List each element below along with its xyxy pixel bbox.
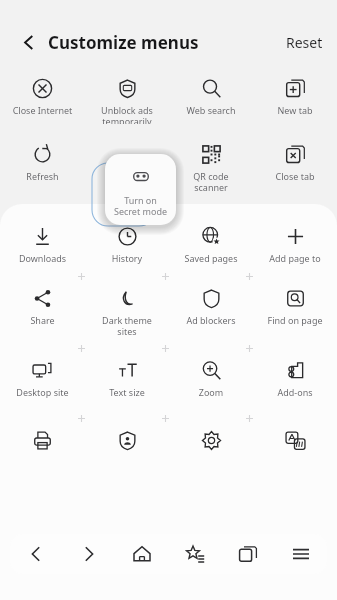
staticText: Turn on Secret mode	[105, 194, 176, 217]
button[interactable]: Close tab	[253, 138, 337, 200]
button[interactable]: Downloads	[0, 220, 85, 270]
staticText: Add-ons	[254, 386, 336, 398]
button[interactable]: Turn on Secret mode	[105, 154, 176, 225]
button[interactable]: Forward	[62, 534, 115, 574]
button[interactable]: Back	[10, 24, 46, 60]
button[interactable]: Ad blockers	[169, 282, 253, 342]
staticText: Downloads	[1, 252, 84, 264]
button[interactable]: Close Internet	[0, 72, 85, 124]
staticText: Saved pages	[170, 252, 252, 264]
button[interactable]: Refresh	[0, 138, 85, 200]
button[interactable]: QR code scanner	[169, 138, 253, 200]
staticText: History	[86, 252, 168, 264]
staticText: Unblock ads temporarily	[86, 104, 168, 124]
staticText: Ad blockers	[170, 314, 252, 326]
staticText: Text size	[86, 386, 168, 398]
staticText: Refresh	[1, 170, 84, 182]
button[interactable]: Dark theme sites	[85, 282, 169, 342]
button[interactable]: History	[85, 220, 169, 270]
button[interactable]: Saved pages	[169, 220, 253, 270]
button[interactable]	[169, 424, 253, 468]
staticText: Dark theme sites	[86, 314, 168, 337]
button[interactable]: Share	[0, 282, 85, 342]
button[interactable]: Add page to	[253, 220, 337, 270]
staticText: Customize menus	[48, 31, 199, 54]
button[interactable]: Back	[10, 534, 62, 574]
button[interactable]: Bookmarks	[168, 534, 221, 574]
staticText: Close tab	[254, 170, 336, 182]
staticText: Web search	[170, 104, 252, 116]
button[interactable]: Unblock ads temporarily	[85, 72, 169, 124]
button[interactable]: Reset	[280, 27, 329, 58]
button[interactable]	[0, 424, 85, 468]
button[interactable]: New tab	[253, 72, 337, 124]
button[interactable]: Zoom	[169, 354, 253, 412]
button[interactable]	[85, 424, 169, 468]
button[interactable]: Text size	[85, 354, 169, 412]
staticText: QR code scanner	[170, 170, 252, 193]
staticText: Close Internet	[1, 104, 84, 116]
button[interactable]: Desktop site	[0, 354, 85, 412]
button[interactable]: Find on page	[253, 282, 337, 342]
button[interactable]: Add-ons	[253, 354, 337, 412]
staticText: Share	[1, 314, 84, 326]
button[interactable]: Tabs	[221, 534, 274, 574]
button[interactable]: Menu	[274, 534, 327, 574]
staticText: New tab	[254, 104, 336, 116]
staticText: Add page to	[254, 252, 336, 264]
staticText: Reset	[286, 33, 323, 52]
button[interactable]	[253, 424, 337, 468]
button[interactable]: Home	[115, 534, 168, 574]
staticText: Desktop site	[1, 386, 84, 398]
staticText: Find on page	[254, 314, 336, 326]
button[interactable]: Web search	[169, 72, 253, 124]
staticText: Zoom	[170, 386, 252, 398]
